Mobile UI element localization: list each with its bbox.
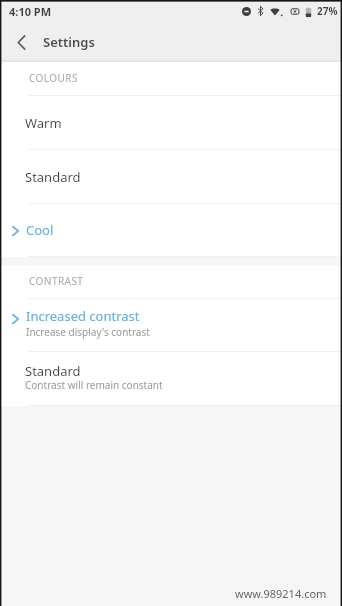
staticText: Standard (25, 362, 81, 380)
staticText: COLOURS (29, 71, 78, 85)
staticText: www.989214.com (235, 586, 327, 601)
staticText: Contrast will remain constant (25, 378, 163, 392)
staticText: Increase display's contrast (26, 325, 150, 339)
staticText: 27% (317, 4, 338, 18)
button[interactable]: Back (2, 22, 40, 62)
staticText: Standard (25, 168, 81, 186)
staticText: Cool (26, 221, 54, 239)
button[interactable]: Standard (0, 150, 342, 203)
staticText: 4:10 PM (9, 4, 52, 19)
button[interactable]: Cool (0, 204, 342, 256)
button[interactable]: Increased contrast (0, 299, 342, 351)
staticText: Warm (25, 114, 62, 132)
staticText: CONTRAST (29, 274, 84, 288)
button[interactable]: Warm (0, 96, 342, 149)
staticText: Increased contrast (26, 307, 140, 325)
staticText: Settings (43, 33, 95, 51)
button[interactable]: Standard (0, 352, 342, 405)
